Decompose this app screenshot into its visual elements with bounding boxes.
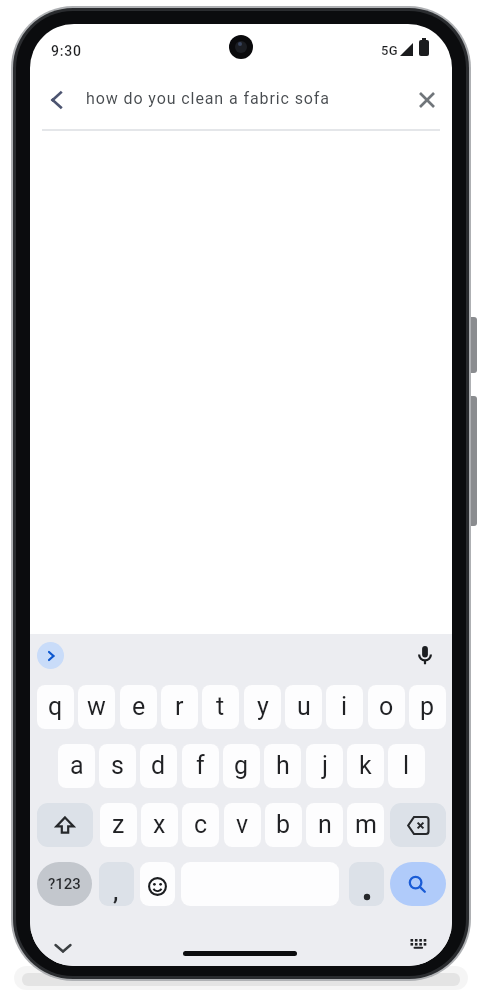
staticText: m: [355, 810, 377, 839]
button[interactable]: q: [37, 685, 74, 729]
staticText: ,: [113, 880, 119, 906]
staticText: how do you clean a fabric sofa: [86, 89, 330, 108]
button[interactable]: n: [306, 803, 343, 847]
button[interactable]: [390, 862, 446, 906]
button[interactable]: [37, 642, 64, 669]
button[interactable]: y: [244, 685, 281, 729]
button[interactable]: ?123: [37, 862, 92, 906]
staticText: h: [276, 751, 290, 780]
staticText: o: [379, 692, 394, 721]
staticText: a: [70, 751, 84, 780]
staticText: w: [87, 692, 106, 721]
staticText: s: [111, 751, 124, 780]
button[interactable]: c: [182, 803, 219, 847]
button[interactable]: [418, 646, 432, 665]
staticText: i: [341, 692, 348, 721]
button[interactable]: k: [347, 744, 384, 788]
staticText: u: [297, 692, 311, 721]
button[interactable]: x: [141, 803, 178, 847]
button[interactable]: [37, 803, 93, 847]
staticText: x: [153, 810, 166, 839]
button[interactable]: [419, 92, 435, 108]
button[interactable]: [48, 91, 66, 109]
button[interactable]: h: [264, 744, 301, 788]
staticText: q: [48, 692, 63, 721]
button[interactable]: e: [120, 685, 157, 729]
button[interactable]: g: [223, 744, 260, 788]
button[interactable]: r: [161, 685, 198, 729]
staticText: n: [318, 810, 332, 839]
staticText: 9:30: [51, 43, 82, 59]
staticText: k: [359, 751, 372, 780]
button[interactable]: [140, 862, 175, 906]
staticText: v: [236, 810, 249, 839]
button[interactable]: z: [100, 803, 137, 847]
button[interactable]: d: [140, 744, 177, 788]
staticText: j: [322, 751, 328, 780]
button[interactable]: l: [388, 744, 425, 788]
button[interactable]: v: [224, 803, 261, 847]
button[interactable]: a: [58, 744, 95, 788]
button[interactable]: t: [202, 685, 239, 729]
button[interactable]: u: [285, 685, 322, 729]
staticText: e: [132, 692, 146, 721]
staticText: p: [420, 692, 435, 721]
staticText: d: [151, 751, 166, 780]
button[interactable]: w: [78, 685, 115, 729]
staticText: g: [234, 751, 249, 780]
button[interactable]: o: [368, 685, 405, 729]
staticText: c: [194, 810, 208, 839]
button[interactable]: s: [99, 744, 136, 788]
staticText: 5G: [381, 43, 398, 58]
staticText: y: [257, 692, 269, 721]
button[interactable]: m: [347, 803, 384, 847]
button[interactable]: [390, 803, 446, 847]
staticText: f: [196, 751, 205, 780]
staticText: ?123: [48, 875, 81, 893]
button[interactable]: i: [326, 685, 363, 729]
button[interactable]: b: [265, 803, 302, 847]
staticText: l: [403, 751, 410, 780]
staticText: b: [276, 810, 291, 839]
staticText: r: [175, 692, 184, 721]
staticText: t: [216, 692, 225, 721]
button[interactable]: p: [409, 685, 446, 729]
button[interactable]: [54, 942, 72, 954]
button[interactable]: j: [306, 744, 343, 788]
staticText: z: [112, 810, 125, 839]
button[interactable]: f: [182, 744, 219, 788]
button[interactable]: [409, 938, 427, 952]
button[interactable]: [349, 862, 384, 906]
button[interactable]: ,: [99, 862, 134, 906]
